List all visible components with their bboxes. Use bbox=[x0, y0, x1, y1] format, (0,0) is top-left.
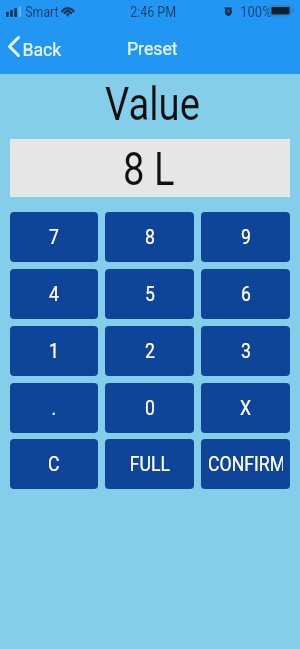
staticText: Smart bbox=[25, 4, 59, 20]
button[interactable]: 2 bbox=[105, 326, 194, 376]
staticText: 3 bbox=[241, 339, 251, 364]
staticText: 5 bbox=[145, 282, 155, 307]
button[interactable]: 8 L bbox=[10, 139, 290, 197]
staticText: Preset bbox=[127, 37, 178, 57]
button[interactable]: 8 bbox=[105, 212, 194, 262]
staticText: 1 bbox=[49, 339, 59, 364]
staticText: 2 bbox=[145, 339, 155, 364]
button[interactable]: 6 bbox=[201, 269, 290, 319]
staticText: 100% bbox=[240, 4, 272, 20]
staticText: 4 bbox=[49, 282, 59, 307]
button[interactable]: 5 bbox=[105, 269, 194, 319]
button[interactable]: 4 bbox=[10, 269, 98, 319]
button[interactable]: 0 bbox=[105, 383, 194, 433]
staticText: 9 bbox=[241, 225, 251, 250]
button[interactable]: Back bbox=[4, 32, 69, 60]
other: Back bbox=[8, 36, 20, 57]
staticText: X bbox=[240, 396, 252, 421]
staticText: Back bbox=[22, 38, 62, 60]
button[interactable]: 7 bbox=[10, 212, 98, 262]
staticText: Value bbox=[105, 78, 200, 124]
button[interactable]: 9 bbox=[201, 212, 290, 262]
button[interactable]: FULL bbox=[105, 439, 194, 489]
button[interactable]: . bbox=[10, 383, 98, 433]
button[interactable]: X bbox=[201, 383, 290, 433]
staticText: C bbox=[48, 452, 60, 477]
button[interactable]: CONFIRM bbox=[201, 439, 290, 489]
staticText: 2:46 PM bbox=[130, 4, 177, 21]
button[interactable]: 1 bbox=[10, 326, 98, 376]
button[interactable]: C bbox=[10, 439, 98, 489]
staticText: 8 bbox=[145, 225, 155, 250]
staticText: 0 bbox=[145, 396, 155, 421]
staticText: 7 bbox=[49, 225, 59, 250]
staticText: 6 bbox=[241, 282, 251, 307]
button[interactable]: 3 bbox=[201, 326, 290, 376]
staticText: FULL bbox=[130, 452, 170, 477]
staticText: CONFIRM bbox=[208, 452, 283, 477]
staticText: . bbox=[51, 396, 56, 421]
staticText: 8 L bbox=[123, 143, 175, 196]
